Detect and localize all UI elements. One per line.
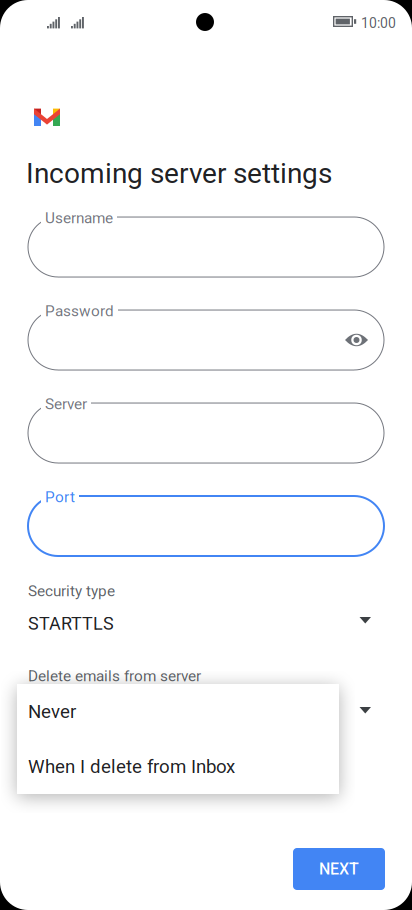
staticText: When I delete from Inbox <box>28 756 235 777</box>
button[interactable]: When I delete from Inbox <box>17 739 339 794</box>
staticText: Password <box>45 302 114 320</box>
staticText: Port <box>45 488 75 506</box>
staticText: Never <box>28 701 76 722</box>
staticText: Security type <box>28 582 115 600</box>
staticText: Username <box>45 209 113 227</box>
staticText: Never <box>28 703 75 724</box>
button[interactable]: NEXT <box>293 848 385 890</box>
button[interactable]: Port <box>28 496 384 556</box>
staticText: Incoming server settings <box>26 157 332 190</box>
staticText: STARTTLS <box>28 613 114 634</box>
button[interactable]: Username <box>28 217 384 277</box>
button[interactable]: Delete emails from server <box>0 666 371 723</box>
staticText: Server <box>45 395 87 413</box>
button[interactable]: Password <box>28 310 384 370</box>
staticText: Delete emails from server <box>28 667 201 685</box>
staticText: NEXT <box>319 860 359 878</box>
staticText: 10:00 <box>361 15 396 31</box>
button[interactable]: Never <box>17 684 339 739</box>
button[interactable]: Security type <box>0 581 371 638</box>
button[interactable]: Server <box>28 403 384 463</box>
